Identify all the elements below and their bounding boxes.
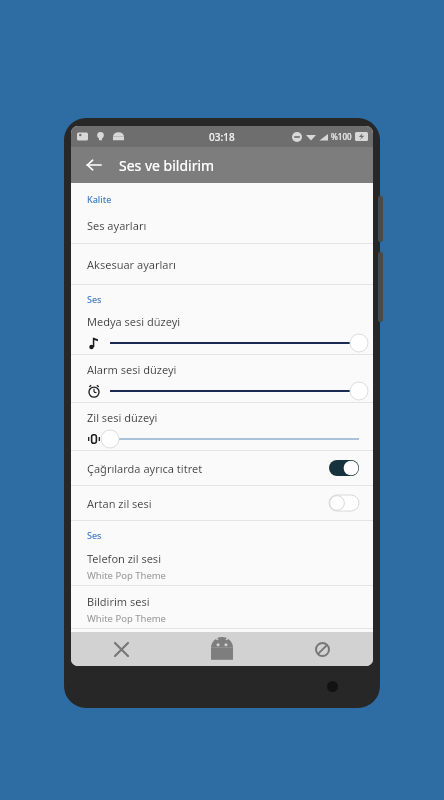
staticText: Telefon zil sesi — [87, 551, 161, 566]
button[interactable]: Artan zil sesi — [71, 486, 373, 520]
button[interactable]: Aksesuar ayarları — [71, 244, 373, 284]
button[interactable]: Telefon zil sesi — [71, 543, 373, 585]
button[interactable]: Bildirim sesi — [71, 586, 373, 628]
staticText: White Pop Theme — [87, 569, 166, 582]
staticText: 03:18 — [209, 130, 235, 144]
staticText: Ses — [87, 529, 102, 541]
staticText: Kalite — [87, 193, 112, 205]
staticText: Ses — [87, 293, 102, 305]
staticText: Ses ayarları — [87, 218, 147, 233]
button[interactable]: Çağrılarda ayrıca titret — [71, 451, 373, 485]
staticText: White Pop Theme — [87, 612, 166, 625]
button[interactable]: Back — [79, 150, 109, 180]
staticText: Medya sesi düzeyi — [87, 314, 181, 329]
staticText: Artan zil sesi — [87, 496, 329, 511]
button[interactable]: Alarm sesi düzeyi — [71, 355, 373, 402]
button[interactable]: Ses ayarları — [71, 207, 373, 243]
button[interactable]: Zil sesi düzeyi — [71, 403, 373, 450]
button[interactable]: Home — [171, 632, 272, 666]
staticText: Çağrılarda ayrıca titret — [87, 461, 329, 476]
button[interactable]: Medya sesi düzeyi — [71, 307, 373, 354]
staticText: Alarm sesi düzeyi — [87, 362, 177, 377]
button[interactable]: Back — [71, 632, 171, 666]
staticText: Aksesuar ayarları — [87, 257, 176, 272]
staticText: %100 — [331, 131, 352, 142]
staticText: Zil sesi düzeyi — [87, 410, 158, 425]
staticText: Bildirim sesi — [87, 594, 150, 609]
button[interactable]: Recents — [272, 632, 373, 666]
staticText: Ses ve bildirim — [119, 156, 215, 175]
